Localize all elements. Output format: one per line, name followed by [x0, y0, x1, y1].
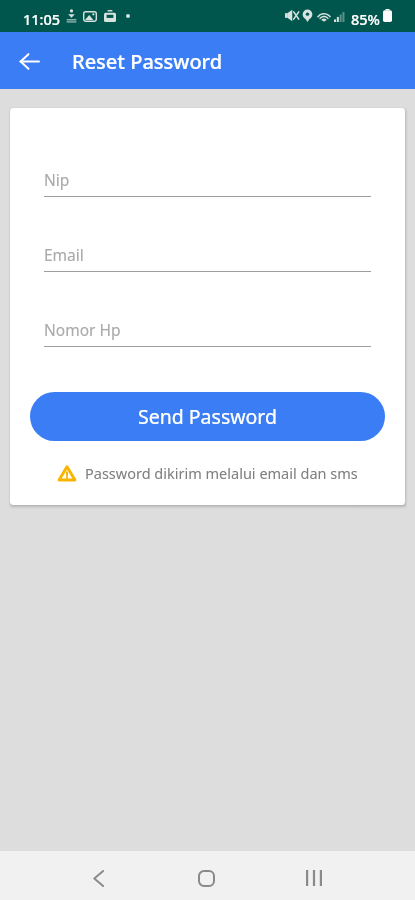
staticText: Password dikirim melalui email dan sms	[85, 463, 358, 483]
button[interactable]: Back	[74, 854, 122, 900]
staticText: 11:05	[23, 9, 61, 29]
button[interactable]: Home	[182, 854, 230, 900]
staticText: Reset Password	[72, 48, 223, 75]
staticText: 85%	[351, 9, 380, 29]
staticText: Nomor Hp	[44, 319, 121, 340]
staticText: Send Password	[138, 403, 278, 430]
button[interactable]: Back	[11, 43, 47, 79]
staticText: Email	[44, 244, 84, 265]
staticText: Nip	[44, 169, 70, 190]
button[interactable]: Send Password	[30, 392, 385, 441]
button[interactable]: Recent apps	[290, 854, 338, 900]
